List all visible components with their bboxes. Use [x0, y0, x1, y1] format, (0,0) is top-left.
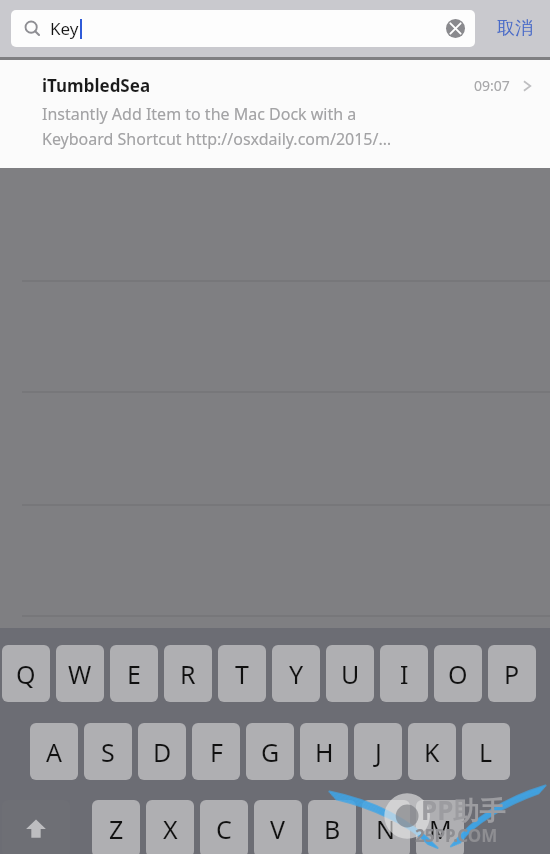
staticText: Q	[16, 657, 36, 691]
staticText: W	[68, 657, 92, 691]
staticText: E	[127, 657, 141, 691]
staticText: 25PP.COM	[415, 824, 498, 847]
staticText: I	[400, 657, 409, 691]
staticText: D	[153, 735, 172, 769]
staticText: K	[424, 735, 440, 769]
staticText: C	[216, 812, 232, 846]
button[interactable]: M	[416, 800, 464, 854]
staticText: Key	[50, 17, 79, 40]
button[interactable]: H	[300, 723, 348, 780]
staticText: N	[376, 812, 396, 846]
button[interactable]: X	[146, 800, 194, 854]
staticText: T	[235, 657, 249, 691]
button[interactable]: S	[84, 723, 132, 780]
staticText: F	[210, 735, 223, 769]
button[interactable]: iTumbledSea	[0, 60, 550, 168]
button[interactable]: U	[326, 645, 374, 702]
button[interactable]: Clear text	[446, 19, 465, 38]
staticText: J	[375, 735, 382, 769]
staticText: X	[163, 812, 178, 846]
button[interactable]: 取消	[483, 0, 547, 57]
button[interactable]: Z	[92, 800, 140, 854]
button[interactable]: K	[408, 723, 456, 780]
staticText: M	[429, 812, 452, 846]
button[interactable]: L	[462, 723, 510, 780]
button[interactable]: C	[200, 800, 248, 854]
staticText: H	[315, 735, 334, 769]
button[interactable]: I	[380, 645, 428, 702]
button[interactable]: A	[30, 723, 78, 780]
button[interactable]: F	[192, 723, 240, 780]
staticText: B	[324, 812, 341, 846]
staticText: Keyboard Shortcut http://osxdaily.com/20…	[42, 128, 392, 150]
button[interactable]: B	[308, 800, 356, 854]
staticText: Instantly Add Item to the Mac Dock with …	[42, 103, 357, 125]
button[interactable]: O	[434, 645, 482, 702]
button[interactable]: V	[254, 800, 302, 854]
staticText: R	[180, 657, 196, 691]
button[interactable]: Y	[272, 645, 320, 702]
staticText: G	[261, 735, 280, 769]
staticText: V	[270, 812, 286, 846]
button[interactable]: Shift	[2, 800, 70, 854]
button[interactable]: J	[354, 723, 402, 780]
button[interactable]: T	[218, 645, 266, 702]
staticText: Z	[109, 812, 124, 846]
button[interactable]: R	[164, 645, 212, 702]
staticText: 取消	[497, 17, 533, 40]
staticText: S	[101, 735, 115, 769]
button[interactable]: W	[56, 645, 104, 702]
staticText: A	[46, 735, 62, 769]
staticText: 09:07	[474, 76, 510, 95]
staticText: U	[341, 657, 360, 691]
staticText: L	[479, 735, 493, 769]
staticText: Y	[289, 657, 304, 691]
button[interactable]: E	[110, 645, 158, 702]
button[interactable]: Q	[2, 645, 50, 702]
staticText: P	[504, 657, 520, 691]
button[interactable]: P	[488, 645, 536, 702]
button[interactable]: N	[362, 800, 410, 854]
staticText: PP助手	[421, 792, 506, 828]
staticText: iTumbledSea	[42, 74, 151, 97]
button[interactable]: G	[246, 723, 294, 780]
button[interactable]: Key	[11, 10, 475, 47]
button[interactable]: D	[138, 723, 186, 780]
staticText: O	[448, 657, 468, 691]
